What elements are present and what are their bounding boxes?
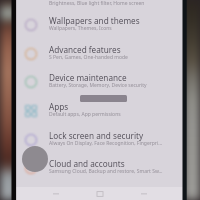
staticText: Wallpapers and themes xyxy=(49,15,140,26)
button[interactable]: Advanced features xyxy=(16,38,184,66)
staticText: Device maintenance xyxy=(49,72,127,83)
staticText: Battery, Storage, Memory, Device securit… xyxy=(49,82,147,89)
staticText: Cloud and accounts xyxy=(49,158,125,169)
button[interactable]: Device maintenance xyxy=(16,66,184,94)
staticText: Default apps, App permissions xyxy=(49,111,121,118)
button[interactable]: Lock screen and security xyxy=(16,124,184,152)
staticText: Samsung Cloud, Backup and restore, Smart… xyxy=(49,168,163,175)
staticText: Wallpapers, Themes, Icons xyxy=(49,25,112,32)
button[interactable]: Wallpapers and themes xyxy=(16,9,184,37)
staticText: Brightness, Blue light filter, Home scre… xyxy=(49,0,145,7)
staticText: Always On Display, Face Recognition, Fin… xyxy=(49,140,163,147)
staticText: Lock screen and security xyxy=(49,130,144,141)
button[interactable]: Apps xyxy=(16,95,184,123)
staticText: S Pen, Games, One-handed mode xyxy=(49,54,128,61)
staticText: Apps xyxy=(49,101,69,112)
button[interactable]: Cloud and accounts xyxy=(16,152,184,180)
staticText: Advanced features xyxy=(49,44,121,55)
